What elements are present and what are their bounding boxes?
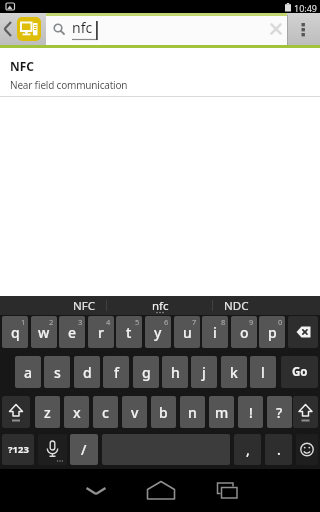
staticText: b	[159, 403, 168, 422]
button[interactable]	[296, 434, 318, 465]
button[interactable]: o	[231, 316, 257, 348]
staticText: 7	[192, 317, 197, 327]
button[interactable]: s	[44, 356, 70, 388]
button[interactable]: /	[70, 434, 98, 465]
staticText: ?123	[8, 443, 29, 456]
staticText: w	[38, 323, 50, 342]
button[interactable]: b	[151, 396, 176, 428]
button[interactable]: a	[15, 356, 41, 388]
button[interactable]: ,	[234, 434, 261, 465]
button[interactable]: j	[191, 356, 217, 388]
staticText: h	[171, 363, 180, 382]
button[interactable]	[76, 469, 116, 512]
button[interactable]	[0, 13, 16, 45]
staticText: NDC	[224, 298, 249, 314]
staticText: l	[261, 363, 265, 382]
staticText: q	[11, 323, 20, 342]
button[interactable]: f	[103, 356, 129, 388]
staticText: nfc	[72, 18, 93, 37]
button[interactable]: g	[133, 356, 159, 388]
button[interactable]: r	[88, 316, 114, 348]
button[interactable]: w	[31, 316, 57, 348]
button[interactable]: !	[238, 396, 263, 428]
button[interactable]: NFC	[0, 48, 320, 96]
staticText: NFC	[73, 298, 95, 314]
staticText: e	[68, 323, 77, 342]
button[interactable]: c	[93, 396, 118, 428]
button[interactable]: nfc	[120, 296, 200, 315]
staticText: i	[213, 323, 217, 342]
button[interactable]: y	[145, 316, 171, 348]
staticText: c	[102, 403, 109, 422]
staticText: !	[249, 403, 253, 422]
staticText: j	[202, 363, 206, 382]
staticText: p	[268, 323, 277, 342]
staticText: d	[83, 363, 92, 382]
button[interactable]: i	[202, 316, 228, 348]
staticText: k	[230, 363, 238, 382]
button[interactable]	[288, 13, 320, 45]
button[interactable]: z	[35, 396, 60, 428]
button[interactable]	[208, 469, 248, 512]
button[interactable]: nfc	[46, 13, 287, 45]
staticText: v	[131, 403, 139, 422]
staticText: 10:49	[294, 2, 318, 14]
button[interactable]: ?	[267, 396, 292, 428]
staticText: 1	[21, 317, 26, 327]
button[interactable]: Go	[281, 356, 318, 388]
button[interactable]: m	[209, 396, 234, 428]
button[interactable]	[17, 17, 41, 41]
staticText: NFC	[10, 58, 35, 74]
button[interactable]: u	[174, 316, 200, 348]
button[interactable]: ?123	[2, 434, 34, 465]
staticText: a	[24, 363, 33, 382]
button[interactable]: k	[221, 356, 247, 388]
button[interactable]: NDC	[196, 296, 276, 315]
staticText: 4	[106, 317, 111, 327]
staticText: f	[114, 363, 119, 382]
button[interactable]: l	[250, 356, 276, 388]
button[interactable]	[38, 434, 67, 465]
staticText: 0	[278, 317, 283, 327]
staticText: o	[240, 323, 249, 342]
button[interactable]: x	[64, 396, 89, 428]
button[interactable]	[288, 316, 318, 348]
button[interactable]: e	[59, 316, 85, 348]
button[interactable]: q	[2, 316, 28, 348]
staticText: z	[44, 403, 51, 422]
staticText: .	[277, 440, 281, 459]
button[interactable]: d	[74, 356, 100, 388]
staticText: 8	[221, 317, 226, 327]
staticText: nfc	[152, 298, 169, 314]
staticText: s	[54, 363, 61, 382]
button[interactable]	[293, 396, 318, 428]
staticText: 2	[49, 317, 54, 327]
button[interactable]	[141, 469, 181, 512]
button[interactable]: p	[259, 316, 285, 348]
staticText: 3	[78, 317, 83, 327]
staticText: n	[188, 403, 197, 422]
staticText: Go	[292, 364, 308, 380]
staticText: /	[81, 440, 87, 459]
staticText: y	[154, 323, 162, 342]
staticText: ,	[246, 440, 250, 459]
staticText: 5	[135, 317, 140, 327]
button[interactable]: NFC	[44, 296, 124, 315]
button[interactable]: n	[180, 396, 205, 428]
staticText: Near field communication	[10, 78, 128, 92]
button[interactable]: .	[265, 434, 292, 465]
staticText: x	[73, 403, 81, 422]
button[interactable]	[2, 396, 30, 428]
button[interactable]: v	[122, 396, 147, 428]
staticText: 9	[249, 317, 254, 327]
staticText: 6	[164, 317, 169, 327]
staticText: u	[183, 323, 192, 342]
staticText: t	[126, 323, 132, 342]
staticText: r	[98, 323, 104, 342]
button[interactable]: h	[162, 356, 188, 388]
staticText: ?	[276, 403, 283, 422]
staticText: g	[142, 363, 151, 382]
button[interactable]	[264, 17, 288, 41]
button[interactable]: t	[116, 316, 142, 348]
